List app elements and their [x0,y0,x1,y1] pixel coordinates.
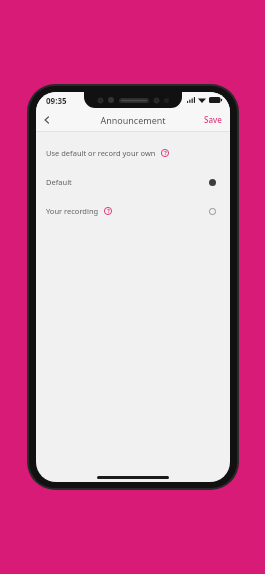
button[interactable]: Your recording [36,203,230,219]
button[interactable]: Help [159,147,171,159]
staticText: Save [204,114,222,125]
staticText: Your recording [46,206,99,216]
staticText: Announcement [100,114,166,126]
staticText: 09:35 [46,95,67,106]
button[interactable]: Save [196,110,230,129]
button[interactable]: Default [36,174,230,190]
button[interactable]: Use default or record your own [36,145,230,161]
button[interactable]: Help [102,205,114,217]
staticText: Default [46,177,72,187]
staticText: ? [164,149,167,157]
staticText: ? [107,207,110,215]
staticText: Use default or record your own [46,148,156,158]
button[interactable]: Back [36,109,58,131]
